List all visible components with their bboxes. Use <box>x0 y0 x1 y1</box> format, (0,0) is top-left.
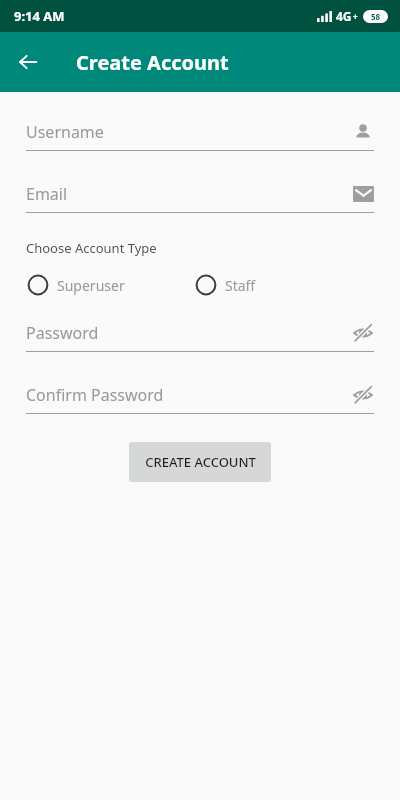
staticText: Password <box>26 322 352 344</box>
staticText: Email <box>26 183 352 205</box>
staticText: 58 <box>371 11 381 22</box>
other: Username <box>353 122 373 142</box>
staticText: Superuser <box>57 276 125 295</box>
other: Toggle password visibility <box>352 384 374 406</box>
staticText: 4G <box>336 8 352 24</box>
other: Email <box>353 186 374 202</box>
staticText: + <box>353 11 358 22</box>
staticText: 9:14 AM <box>14 7 65 25</box>
staticText: Confirm Password <box>26 384 352 406</box>
staticText: Staff <box>225 276 256 295</box>
button[interactable]: Confirm Password <box>26 382 374 414</box>
button[interactable]: Password <box>26 320 374 352</box>
button[interactable]: CREATE ACCOUNT <box>129 442 271 482</box>
button[interactable]: Username <box>26 119 374 151</box>
staticText: Create Account <box>76 49 229 76</box>
other: Toggle password visibility <box>352 322 374 344</box>
staticText: Choose Account Type <box>26 239 157 257</box>
button[interactable]: Back <box>8 42 48 82</box>
button[interactable]: Staff <box>195 274 256 296</box>
button[interactable]: Superuser <box>27 274 125 296</box>
staticText: Username <box>26 121 352 143</box>
staticText: CREATE ACCOUNT <box>145 453 256 471</box>
button[interactable]: Email <box>26 181 374 213</box>
